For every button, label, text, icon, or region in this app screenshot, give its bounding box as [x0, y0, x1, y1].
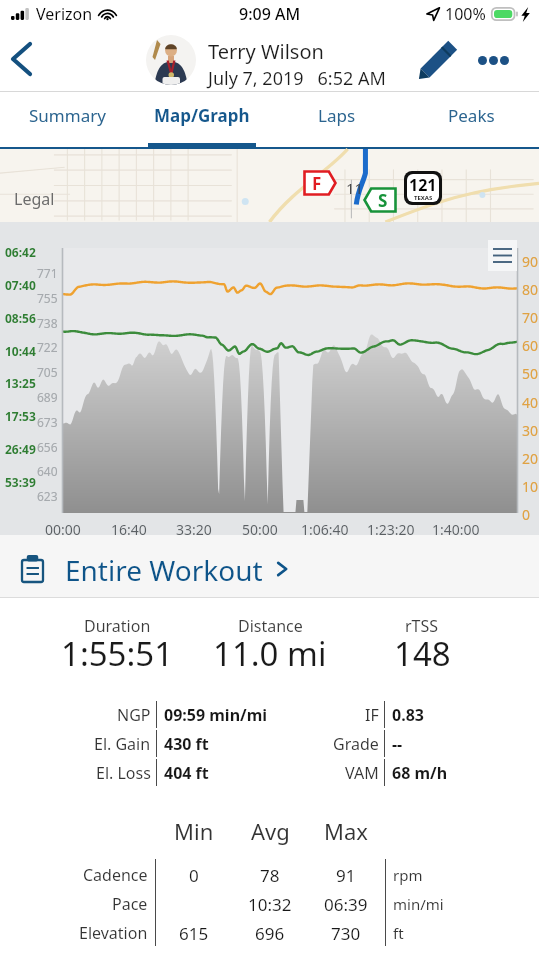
staticText: 738: [37, 315, 58, 331]
staticText: 0: [522, 505, 531, 524]
staticText: Map/Graph: [154, 104, 250, 127]
staticText: NGP: [117, 704, 151, 726]
staticText: 148: [394, 631, 451, 667]
staticText: Verizon: [36, 3, 93, 25]
staticText: 17:53: [5, 408, 36, 424]
staticText: Laps: [318, 104, 356, 127]
staticText: 50: [522, 364, 539, 383]
staticText: 1:06:40: [301, 520, 349, 539]
staticText: 673: [37, 414, 58, 430]
staticText: Duration: [84, 615, 151, 635]
staticText: 615: [179, 922, 209, 945]
staticText: 640: [37, 463, 58, 479]
staticText: 53:39: [5, 474, 36, 490]
staticText: IF: [365, 704, 379, 726]
staticText: --: [392, 733, 403, 755]
button[interactable]: Map/Graph: [134, 92, 269, 149]
staticText: 1:55:51: [61, 631, 174, 667]
staticText: El. Loss: [96, 762, 151, 784]
staticText: Max: [324, 816, 368, 845]
button[interactable]: Edit: [416, 39, 459, 82]
staticText: Summary: [29, 104, 106, 127]
staticText: 100%: [445, 3, 486, 25]
staticText: Grade: [333, 733, 379, 755]
staticText: Min: [174, 816, 214, 845]
staticText: Terry Wilson: [208, 38, 324, 65]
staticText: 696: [255, 922, 285, 945]
staticText: 404 ft: [164, 762, 209, 784]
staticText: 755: [37, 290, 58, 306]
button[interactable]: Laps: [269, 92, 404, 149]
button[interactable]: Back: [0, 28, 44, 92]
staticText: 40: [522, 393, 539, 412]
staticText: VAM: [345, 762, 379, 784]
staticText: 705: [37, 364, 58, 380]
staticText: rTSS: [405, 615, 439, 635]
staticText: 33:20: [176, 520, 212, 539]
staticText: 08:56: [5, 310, 36, 326]
button[interactable]: Graph options: [488, 240, 517, 271]
staticText: F: [312, 172, 322, 195]
staticText: ft: [393, 923, 404, 943]
staticText: 00:00: [45, 520, 81, 539]
staticText: 9:09 AM: [239, 3, 301, 25]
staticText: Peaks: [448, 104, 495, 127]
staticText: Distance: [238, 615, 303, 635]
staticText: July 7, 2019 6:52 AM: [208, 66, 386, 91]
staticText: min/mi: [393, 894, 444, 914]
staticText: 10: [522, 477, 539, 496]
staticText: 771: [37, 265, 58, 281]
staticText: 689: [37, 389, 58, 405]
staticText: Entire Workout: [65, 551, 263, 589]
staticText: 10:44: [5, 343, 36, 359]
staticText: 70: [522, 308, 539, 327]
button[interactable]: Entire Workout: [0, 535, 539, 598]
staticText: 68 m/h: [392, 762, 448, 784]
button[interactable]: Summary: [0, 92, 134, 149]
staticText: 50:00: [242, 520, 278, 539]
staticText: 09:59 min/mi: [164, 704, 268, 726]
staticText: Cadence: [83, 864, 148, 886]
staticText: 0.83: [392, 704, 424, 726]
staticText: 656: [37, 439, 58, 455]
button[interactable]: Peaks: [404, 92, 539, 149]
staticText: 11.0 mi: [213, 631, 327, 667]
staticText: TEXAS: [414, 194, 433, 200]
button[interactable]: More options: [469, 39, 518, 82]
staticText: 1:23:20: [367, 520, 415, 539]
staticText: 1:40:00: [432, 520, 480, 539]
staticText: 20: [522, 449, 539, 468]
staticText: 13:25: [5, 375, 36, 391]
staticText: 730: [331, 922, 361, 945]
staticText: 11: [346, 178, 364, 198]
staticText: 0: [189, 864, 199, 887]
staticText: rpm: [393, 865, 423, 885]
staticText: Pace: [112, 893, 148, 915]
staticText: 78: [260, 864, 280, 887]
staticText: 430 ft: [164, 733, 209, 755]
staticText: Elevation: [79, 922, 148, 944]
staticText: 10:32: [248, 893, 292, 916]
staticText: El. Gain: [94, 733, 151, 755]
staticText: 16:40: [111, 520, 147, 539]
staticText: 30: [522, 421, 539, 440]
staticText: Legal: [14, 188, 55, 210]
staticText: 90: [522, 252, 539, 271]
staticText: S: [378, 189, 388, 212]
staticText: Avg: [251, 816, 290, 845]
staticText: 60: [522, 336, 539, 355]
staticText: 91: [336, 864, 356, 887]
staticText: 121: [409, 174, 437, 196]
staticText: 26:49: [5, 441, 36, 457]
staticText: 623: [37, 488, 58, 504]
staticText: 80: [522, 280, 539, 299]
staticText: 06:42: [5, 244, 36, 260]
staticText: 07:40: [5, 277, 36, 293]
staticText: 722: [37, 339, 58, 355]
staticText: 06:39: [324, 893, 368, 916]
